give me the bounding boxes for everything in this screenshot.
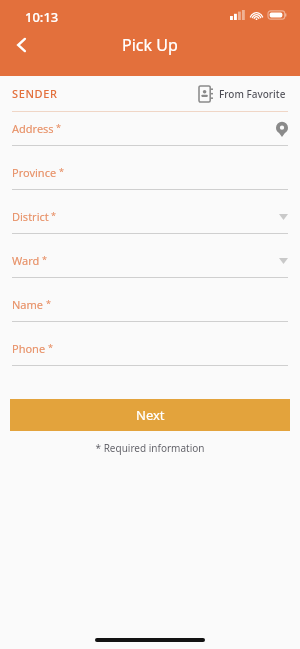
staticText: From Favorite [219, 87, 286, 101]
button[interactable]: Address [0, 112, 300, 156]
staticText: Phone [12, 341, 46, 356]
staticText: * [59, 165, 64, 177]
staticText: Pick Up [122, 34, 178, 56]
staticText: * Required information [0, 441, 300, 455]
staticText: Next [136, 406, 165, 424]
button[interactable]: Phone [0, 332, 300, 376]
staticText: Address [12, 121, 54, 136]
staticText: SENDER [12, 86, 58, 101]
staticText: * [46, 297, 51, 309]
staticText: * [42, 253, 47, 265]
staticText: Name [12, 297, 44, 312]
staticText: * [48, 341, 53, 353]
staticText: * [51, 209, 56, 221]
staticText: Province [12, 165, 57, 180]
button[interactable]: Province [0, 156, 300, 200]
button[interactable]: Ward [0, 244, 300, 288]
staticText: * [56, 121, 61, 133]
button[interactable]: From Favorite [197, 83, 288, 105]
button[interactable]: District [0, 200, 300, 244]
button[interactable]: Name [0, 288, 300, 332]
staticText: District [12, 209, 49, 224]
staticText: Ward [12, 253, 40, 268]
button[interactable]: Back [0, 23, 44, 67]
staticText: 10:13 [25, 8, 59, 26]
button[interactable]: Next [10, 399, 290, 431]
